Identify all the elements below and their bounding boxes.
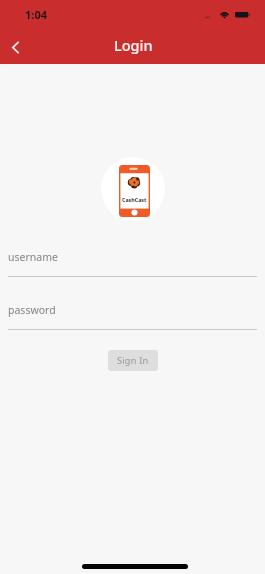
- staticText: 1:04: [25, 7, 47, 22]
- staticText: CashCast: [122, 196, 147, 203]
- staticText: username: [8, 250, 58, 264]
- button[interactable]: Sign In: [108, 350, 158, 371]
- button[interactable]: username: [8, 250, 257, 277]
- staticText: password: [8, 303, 56, 317]
- staticText: Sign In: [117, 354, 149, 367]
- button[interactable]: password: [8, 303, 257, 330]
- button[interactable]: Back: [0, 30, 32, 64]
- staticText: Login: [114, 35, 153, 55]
